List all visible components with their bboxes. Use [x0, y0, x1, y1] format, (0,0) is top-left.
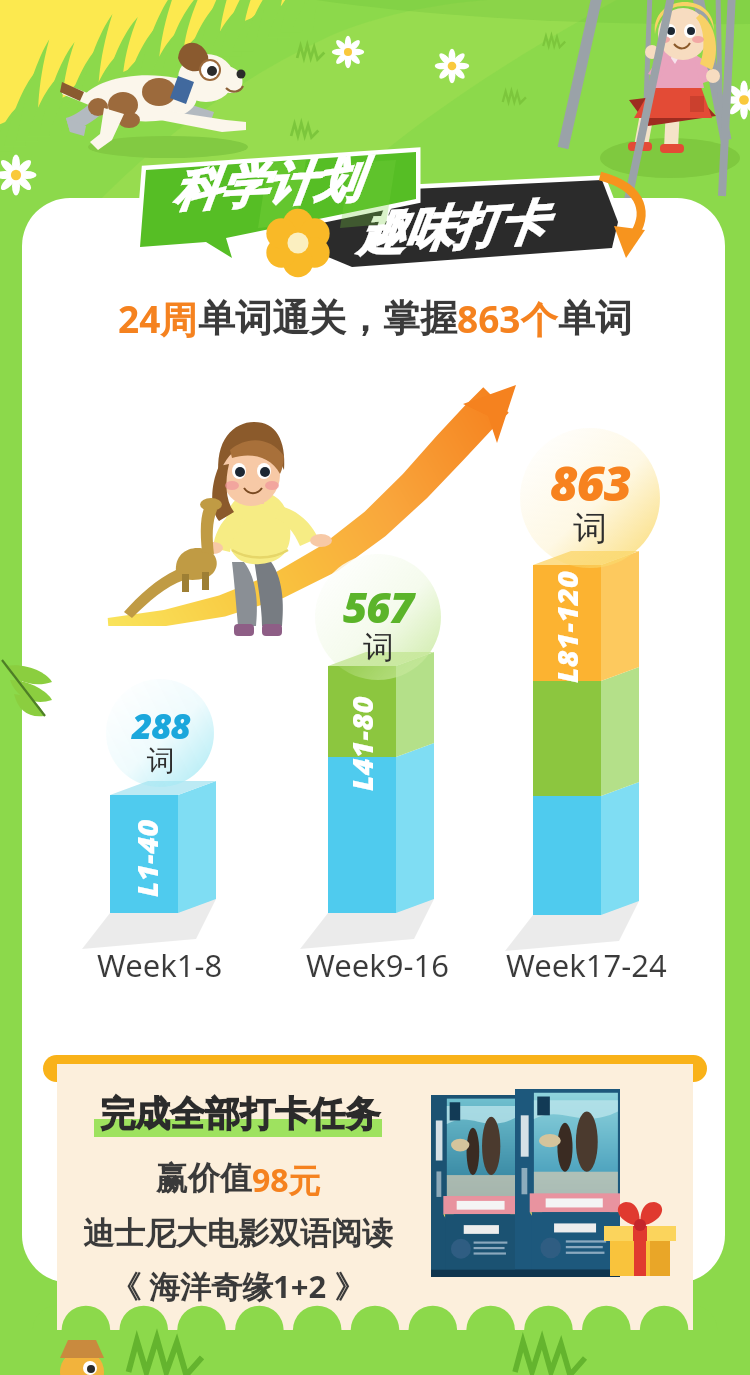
staticText: 词 [363, 628, 394, 667]
staticText: 迪士尼大电影双语阅读 [83, 1214, 393, 1253]
button[interactable]: 科学计划 趣味打卡 [140, 152, 618, 270]
button[interactable]: Week17-24 L81-120 863词 [518, 424, 663, 990]
staticText: Week17-24 [506, 944, 667, 986]
button[interactable]: Week9-16 L41-80 567词 [312, 545, 452, 990]
staticText: L1-40 [127, 819, 166, 897]
staticText: 赢价值 [156, 1158, 252, 1198]
staticText: 567 [343, 578, 414, 635]
staticText: 词 [147, 743, 175, 778]
staticText: 863 [550, 450, 631, 515]
staticText: 单词 [558, 295, 632, 342]
staticText: L81-120 [547, 570, 586, 683]
staticText: 288 [132, 702, 190, 750]
staticText: L41-80 [342, 695, 381, 791]
staticText: 趣味打卡 [355, 193, 547, 263]
staticText: 单词通关，掌握 [198, 295, 457, 342]
staticText: 《 海洋奇缘1+2 》 [110, 1265, 366, 1307]
staticText: 词 [573, 507, 607, 550]
staticText: 完成全部打卡任务 [100, 1092, 380, 1136]
staticText: 98元 [252, 1158, 321, 1202]
button[interactable]: 完成全部打卡任务 赢价值98元 迪士尼大电影双语阅读《海洋奇缘1+2》 [43, 1055, 707, 1330]
staticText: Week1-8 [97, 944, 223, 986]
button[interactable]: Week1-8 L1-40 288词 [96, 660, 236, 990]
staticText: 24周 [118, 293, 198, 344]
staticText: 科学计划 [170, 150, 362, 220]
staticText: Week9-16 [306, 944, 449, 986]
staticText: 863个 [457, 293, 558, 344]
